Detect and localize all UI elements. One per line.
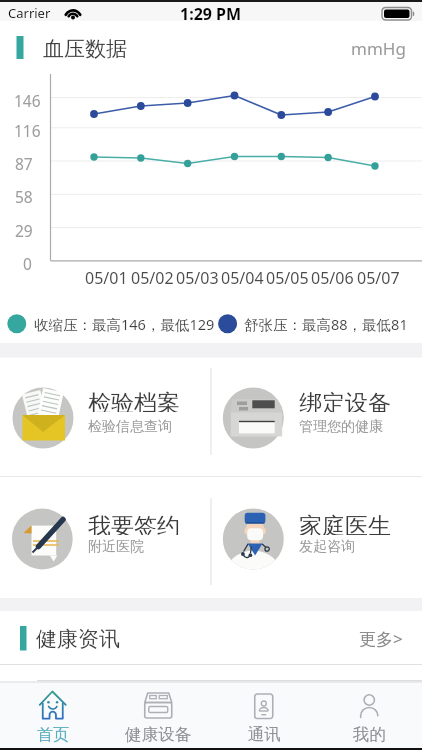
staticText: 我要签约 <box>88 512 180 535</box>
staticText: 管理您的健康 <box>299 418 383 436</box>
staticText: 05/07 <box>357 267 400 286</box>
staticText: 健康设备 <box>125 724 191 745</box>
staticText: 血压数据 <box>43 36 127 61</box>
staticText: 05/05 <box>266 267 309 286</box>
staticText: 我的 <box>353 724 386 745</box>
staticText: 舒张压：最高88，最低81 <box>244 314 408 334</box>
button[interactable] <box>211 357 422 476</box>
staticText: 更多> <box>359 627 403 650</box>
staticText: 146 <box>14 90 41 108</box>
staticText: 29 <box>15 220 33 238</box>
button[interactable] <box>0 477 211 597</box>
staticText: 05/06 <box>311 267 354 286</box>
staticText: 87 <box>15 153 33 171</box>
staticText: 116 <box>14 120 41 138</box>
staticText: 附近医院 <box>88 538 144 556</box>
staticText: 05/03 <box>176 267 219 286</box>
staticText: 首页 <box>37 725 69 745</box>
staticText: 检验信息查询 <box>88 418 172 436</box>
staticText: Carrier <box>8 4 51 22</box>
staticText: 0 <box>23 253 32 271</box>
button[interactable] <box>106 682 212 750</box>
staticText: 收缩压：最高146，最低129 <box>34 314 215 334</box>
button[interactable] <box>211 477 422 597</box>
staticText: 绑定设备 <box>299 389 391 412</box>
staticText: 检验档案 <box>88 389 180 412</box>
staticText: 发起咨询 <box>299 538 355 556</box>
button[interactable] <box>317 682 422 750</box>
button[interactable] <box>211 682 317 750</box>
staticText: 58 <box>15 186 33 204</box>
staticText: 05/02 <box>131 267 174 286</box>
staticText: 家庭医生 <box>299 512 391 535</box>
staticText: 健康资讯 <box>36 626 120 651</box>
staticText: 05/04 <box>221 267 264 286</box>
button[interactable] <box>0 682 106 750</box>
staticText: 通讯 <box>248 724 281 745</box>
button[interactable]: 更多> <box>317 627 403 650</box>
button[interactable] <box>0 357 211 476</box>
staticText: mmHg <box>351 37 406 60</box>
staticText: 05/01 <box>85 267 128 286</box>
staticText: 1:29 PM <box>180 3 242 22</box>
